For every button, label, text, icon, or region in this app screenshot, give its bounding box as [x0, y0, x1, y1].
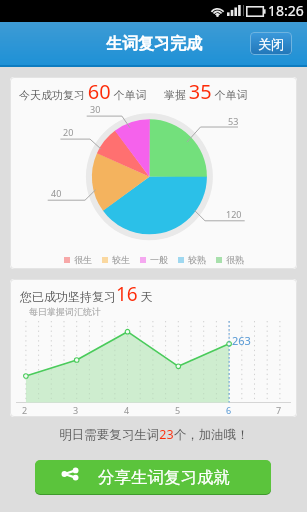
staticText: 6: [226, 404, 232, 416]
staticText: 5: [175, 404, 181, 416]
staticText: 今天成功复习 60 个单词: [19, 78, 147, 105]
staticText: 很生: [74, 254, 92, 265]
staticText: 263: [232, 333, 251, 348]
staticText: 生词复习完成: [106, 34, 202, 54]
button[interactable]: 分享生词复习成就: [35, 460, 271, 494]
button[interactable]: 关闭: [250, 32, 292, 55]
staticText: 您已成功坚持复习16 天: [20, 281, 153, 307]
staticText: 3: [73, 404, 79, 416]
staticText: 关闭: [258, 36, 284, 52]
staticText: 4: [124, 404, 130, 416]
staticText: 每日掌握词汇统计: [29, 306, 101, 317]
staticText: 53: [228, 115, 239, 127]
staticText: 20: [63, 126, 74, 138]
staticText: 很熟: [226, 254, 244, 265]
staticText: 7: [276, 404, 282, 416]
staticText: 120: [226, 208, 242, 220]
staticText: 40: [51, 187, 62, 199]
staticText: 明日需要复习生词23个，加油哦！: [59, 426, 249, 443]
staticText: 分享生词复习成就: [98, 467, 230, 488]
staticText: 2: [22, 404, 28, 416]
staticText: 较熟: [188, 254, 206, 265]
staticText: 一般: [150, 254, 168, 265]
staticText: 30: [90, 103, 101, 115]
staticText: 掌握 35 个单词: [164, 78, 248, 105]
staticText: 18:26: [268, 1, 304, 20]
staticText: 较生: [112, 254, 130, 265]
